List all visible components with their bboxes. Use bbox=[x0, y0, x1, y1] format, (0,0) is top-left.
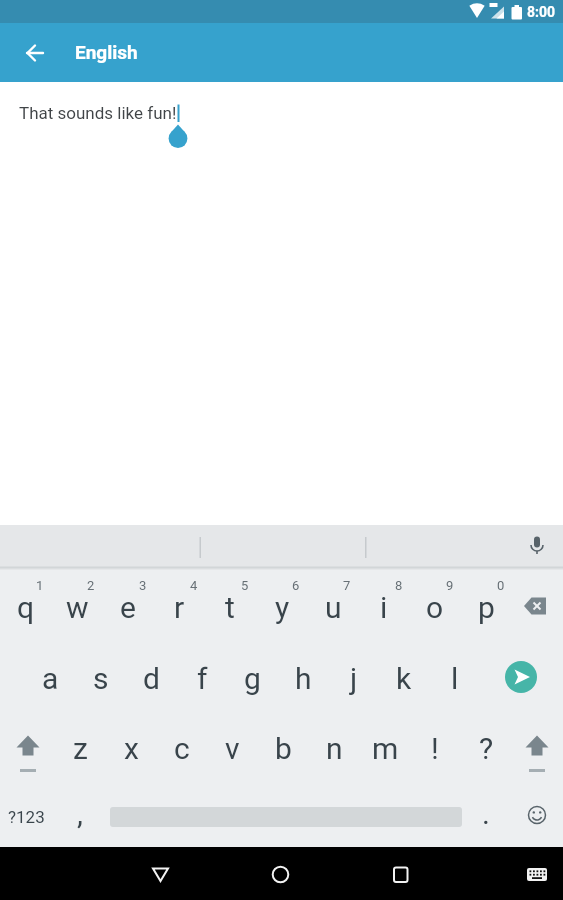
staticText: 5 bbox=[241, 578, 249, 593]
staticText: s bbox=[93, 661, 109, 696]
button[interactable]: 7 bbox=[338, 577, 356, 593]
staticText: 8 bbox=[395, 578, 403, 593]
button[interactable]: a bbox=[25, 646, 75, 710]
staticText: , bbox=[77, 796, 83, 831]
button[interactable]: 0 bbox=[492, 577, 510, 593]
button[interactable]: r bbox=[154, 575, 204, 639]
button[interactable]: k bbox=[379, 646, 429, 710]
button[interactable]: , bbox=[55, 781, 105, 845]
staticText: y bbox=[275, 590, 290, 625]
staticText: ? bbox=[479, 731, 494, 766]
button[interactable]: q bbox=[1, 575, 51, 639]
staticText: 8:00 bbox=[527, 4, 556, 20]
button[interactable]: s bbox=[76, 646, 126, 710]
button[interactable]: h bbox=[278, 646, 328, 710]
staticText: f bbox=[197, 661, 208, 696]
button[interactable]: . bbox=[461, 781, 511, 845]
staticText: d bbox=[143, 661, 160, 696]
button[interactable]: v bbox=[207, 716, 257, 780]
button[interactable]: g bbox=[227, 646, 277, 710]
staticText: 9 bbox=[446, 578, 454, 593]
staticText: o bbox=[426, 590, 444, 625]
button[interactable]: t bbox=[205, 575, 255, 639]
button[interactable]: ?123 bbox=[1, 785, 51, 849]
staticText: z bbox=[73, 731, 88, 766]
staticText: g bbox=[244, 661, 261, 696]
staticText: l bbox=[451, 661, 459, 696]
staticText: t bbox=[225, 590, 235, 625]
button[interactable]: c bbox=[157, 716, 207, 780]
button[interactable]: w bbox=[52, 575, 102, 639]
staticText: That sounds like fun! bbox=[19, 103, 177, 123]
button[interactable] bbox=[511, 580, 561, 632]
button[interactable]: 5 bbox=[236, 577, 254, 593]
button[interactable] bbox=[0, 847, 187, 900]
staticText: e bbox=[120, 590, 136, 625]
button[interactable]: y bbox=[257, 575, 307, 639]
button[interactable]: f bbox=[177, 646, 227, 710]
staticText: v bbox=[225, 731, 240, 766]
button[interactable]: j bbox=[329, 646, 379, 710]
button[interactable]: n bbox=[309, 716, 359, 780]
staticText: ! bbox=[431, 731, 439, 766]
button[interactable]: 4 bbox=[185, 577, 203, 593]
button[interactable] bbox=[513, 790, 561, 840]
staticText: 3 bbox=[139, 578, 147, 593]
button[interactable]: x bbox=[106, 716, 156, 780]
staticText: x bbox=[124, 731, 139, 766]
staticText: u bbox=[325, 590, 342, 625]
button[interactable]: 2 bbox=[82, 577, 100, 593]
staticText: English bbox=[75, 41, 138, 63]
button[interactable]: p bbox=[461, 575, 511, 639]
staticText: n bbox=[326, 731, 343, 766]
button[interactable]: d bbox=[126, 646, 176, 710]
staticText: h bbox=[295, 661, 312, 696]
button[interactable]: o bbox=[410, 575, 460, 639]
staticText: k bbox=[396, 661, 412, 696]
staticText: 7 bbox=[343, 578, 351, 593]
button[interactable]: 3 bbox=[134, 577, 152, 593]
staticText: c bbox=[174, 731, 190, 766]
button[interactable] bbox=[187, 847, 375, 900]
staticText: p bbox=[478, 590, 495, 625]
staticText: q bbox=[17, 590, 35, 625]
button[interactable]: 8 bbox=[390, 577, 408, 593]
staticText: 1 bbox=[36, 578, 44, 593]
button[interactable] bbox=[375, 847, 563, 900]
button[interactable]: u bbox=[308, 575, 358, 639]
button[interactable]: ? bbox=[461, 716, 511, 780]
button[interactable]: m bbox=[360, 716, 410, 780]
staticText: r bbox=[174, 590, 185, 625]
button[interactable]: 9 bbox=[441, 577, 459, 593]
staticText: m bbox=[372, 731, 399, 766]
staticText: . bbox=[482, 796, 490, 831]
button[interactable]: b bbox=[258, 716, 308, 780]
button[interactable]: 6 bbox=[287, 577, 305, 593]
button[interactable]: l bbox=[430, 646, 480, 710]
staticText: 2 bbox=[87, 578, 95, 593]
staticText: j bbox=[350, 661, 358, 696]
button[interactable] bbox=[497, 653, 545, 701]
staticText: 4 bbox=[190, 578, 198, 593]
button[interactable]: e bbox=[103, 575, 153, 639]
button[interactable] bbox=[513, 720, 561, 774]
button[interactable]: ! bbox=[410, 716, 460, 780]
button[interactable]: 1 bbox=[31, 577, 49, 593]
button[interactable] bbox=[4, 720, 52, 774]
staticText: 0 bbox=[497, 578, 505, 593]
button[interactable]: i bbox=[359, 575, 409, 639]
staticText: 6 bbox=[292, 578, 300, 593]
staticText: b bbox=[275, 731, 292, 766]
button[interactable]: z bbox=[55, 716, 105, 780]
staticText: w bbox=[66, 590, 89, 625]
button[interactable] bbox=[15, 33, 55, 73]
staticText: ?123 bbox=[8, 807, 45, 827]
staticText: i bbox=[380, 590, 388, 625]
staticText: a bbox=[42, 661, 59, 696]
button[interactable] bbox=[507, 525, 563, 570]
